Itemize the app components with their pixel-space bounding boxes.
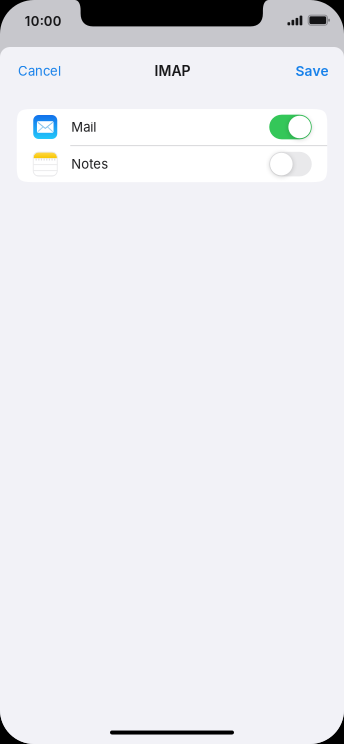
- staticText: 10:00: [25, 13, 62, 29]
- staticText: Notes: [71, 156, 108, 172]
- staticText: Mail: [71, 119, 96, 135]
- staticText: Save: [295, 63, 328, 79]
- button[interactable]: Mail: [17, 109, 327, 145]
- button[interactable]: Cancel: [18, 52, 71, 90]
- button[interactable]: Notes: [17, 146, 327, 182]
- staticText: IMAP: [154, 62, 190, 79]
- button[interactable]: Save: [285, 52, 328, 90]
- staticText: Cancel: [18, 63, 61, 79]
